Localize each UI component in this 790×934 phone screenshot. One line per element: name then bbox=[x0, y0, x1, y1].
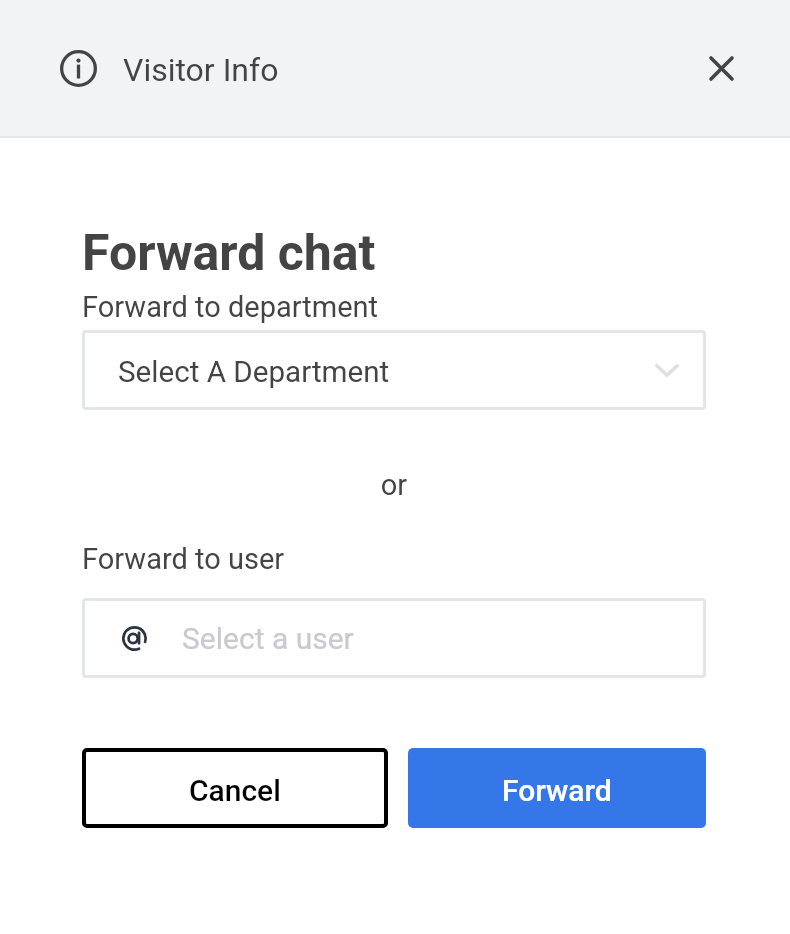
staticText: Select a user bbox=[182, 621, 354, 656]
staticText: Forward chat bbox=[82, 224, 376, 283]
button[interactable]: Cancel bbox=[82, 748, 388, 828]
button[interactable]: Info bbox=[44, 34, 112, 102]
button[interactable]: Forward bbox=[408, 748, 706, 828]
staticText: Forward to department bbox=[82, 290, 379, 324]
staticText: Select A Department bbox=[118, 355, 390, 390]
button[interactable]: Select A Department bbox=[82, 330, 706, 410]
button[interactable]: Close bbox=[687, 34, 755, 102]
staticText: Cancel bbox=[189, 773, 281, 808]
staticText: Visitor Info bbox=[123, 51, 279, 89]
staticText: Forward to user bbox=[82, 542, 285, 576]
staticText: or bbox=[82, 468, 706, 502]
button[interactable]: Select a user bbox=[82, 598, 706, 678]
staticText: Forward bbox=[502, 773, 612, 808]
